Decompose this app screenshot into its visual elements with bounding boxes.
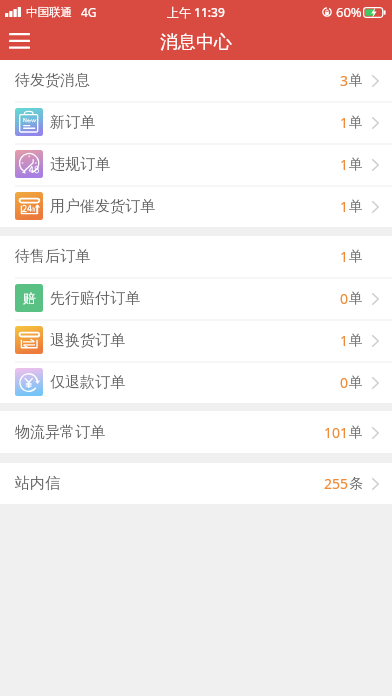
- button[interactable]: 退换货订单: [0, 319, 392, 361]
- staticText: 待发货消息: [15, 71, 90, 90]
- staticText: 单: [349, 290, 363, 308]
- staticText: 上午 11:39: [167, 4, 225, 20]
- staticText: 单: [349, 198, 363, 216]
- staticText: 101: [324, 423, 349, 442]
- button[interactable]: 用户催发货订单: [0, 185, 392, 227]
- staticText: 用户催发货订单: [50, 197, 155, 216]
- staticText: 赔: [23, 290, 36, 306]
- button[interactable]: 待发货消息: [0, 60, 392, 101]
- staticText: 0: [340, 373, 349, 392]
- staticText: 1: [340, 155, 349, 174]
- staticText: 物流异常订单: [15, 423, 105, 442]
- staticText: 站内信: [15, 474, 60, 493]
- staticText: 4G: [81, 4, 97, 20]
- staticText: 消息中心: [160, 31, 232, 54]
- staticText: 255: [324, 474, 349, 493]
- staticText: 新订单: [50, 113, 95, 132]
- staticText: 单: [349, 424, 363, 442]
- staticText: 仅退款订单: [50, 373, 125, 392]
- staticText: 单: [349, 332, 363, 350]
- button[interactable]: 仅退款订单: [0, 361, 392, 403]
- staticText: 单: [349, 248, 363, 266]
- button[interactable]: Open navigation menu: [0, 24, 38, 60]
- staticText: 先行赔付订单: [50, 289, 140, 308]
- button[interactable]: 新订单: [0, 101, 392, 143]
- staticText: 单: [349, 72, 363, 90]
- button[interactable]: 物流异常订单: [0, 411, 392, 453]
- staticText: 3: [340, 71, 349, 90]
- staticText: 待售后订单: [15, 247, 90, 266]
- staticText: 1: [340, 113, 349, 132]
- staticText: 1: [340, 331, 349, 350]
- button[interactable]: 站内信: [0, 463, 392, 504]
- staticText: 违规订单: [50, 155, 110, 174]
- button[interactable]: 违规订单: [0, 143, 392, 185]
- staticText: 1: [340, 197, 349, 216]
- staticText: 1: [340, 247, 349, 266]
- staticText: 单: [349, 114, 363, 132]
- staticText: 条: [349, 475, 363, 493]
- button[interactable]: 待售后订单: [0, 236, 392, 277]
- staticText: 中国联通: [26, 5, 72, 19]
- staticText: 退换货订单: [50, 331, 125, 350]
- staticText: 60%: [336, 3, 362, 21]
- button[interactable]: 赔: [0, 277, 392, 319]
- staticText: 单: [349, 374, 363, 392]
- staticText: 0: [340, 289, 349, 308]
- staticText: 单: [349, 156, 363, 174]
